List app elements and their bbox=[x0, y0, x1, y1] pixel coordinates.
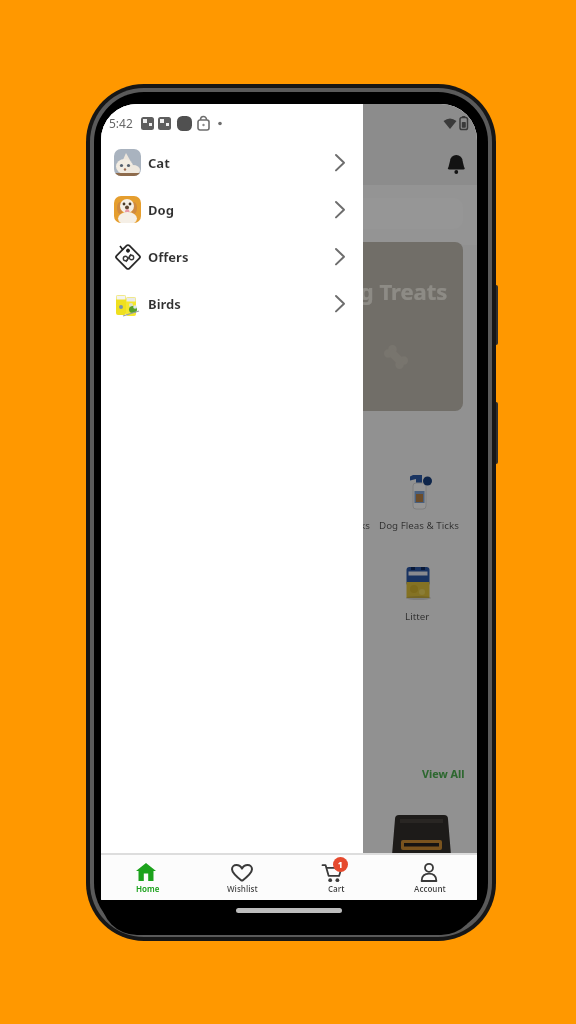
button[interactable]: Dog bbox=[101, 186, 363, 233]
button[interactable]: Cat bbox=[101, 139, 363, 186]
button[interactable]: 1 bbox=[289, 855, 383, 900]
staticText: Dog Fleas & Ticks bbox=[379, 519, 459, 532]
staticText: View All bbox=[422, 766, 465, 781]
staticText: Wishlist bbox=[227, 883, 258, 894]
staticText: Dog Treats bbox=[330, 276, 448, 306]
staticText: Offers bbox=[148, 248, 189, 266]
button[interactable] bbox=[447, 153, 466, 176]
button[interactable]: Birds bbox=[101, 280, 363, 327]
staticText: ks bbox=[360, 519, 370, 532]
staticText: Birds bbox=[148, 295, 181, 313]
button[interactable]: View All bbox=[417, 763, 471, 783]
staticText: Cart bbox=[328, 883, 345, 894]
button[interactable]: Home bbox=[101, 855, 195, 900]
staticText: 1 bbox=[338, 859, 343, 870]
staticText: Litter bbox=[405, 610, 430, 623]
button[interactable]: Wishlist bbox=[195, 855, 289, 900]
staticText: 5:42 bbox=[109, 115, 133, 131]
button[interactable]: Offers bbox=[101, 233, 363, 280]
staticText: Home bbox=[136, 883, 160, 894]
staticText: Account bbox=[414, 883, 446, 894]
staticText: Cat bbox=[148, 154, 170, 172]
staticText: Dog bbox=[148, 201, 174, 219]
button[interactable]: Account bbox=[383, 855, 477, 900]
